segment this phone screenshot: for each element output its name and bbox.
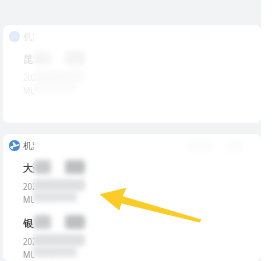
staticText: 机票 bbox=[23, 31, 41, 42]
staticText: MU2831 bbox=[23, 194, 55, 205]
button[interactable]: 机票 bbox=[3, 134, 261, 261]
staticText: 银川 bbox=[23, 217, 43, 230]
staticText: 机票 bbox=[23, 140, 41, 151]
staticText: 昆明 bbox=[23, 53, 43, 66]
staticText: MU9902 bbox=[23, 249, 55, 260]
staticText: MU5138 bbox=[23, 85, 55, 96]
staticText: 大连 bbox=[23, 162, 43, 175]
staticText: 2024-06-02 bbox=[23, 181, 65, 192]
staticText: 2024-07-11 bbox=[23, 236, 65, 247]
